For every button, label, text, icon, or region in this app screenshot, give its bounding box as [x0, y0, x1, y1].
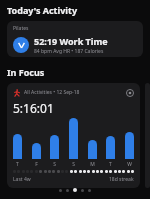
button[interactable]: Options [125, 88, 134, 97]
staticText: In Focus [7, 66, 45, 78]
staticText: 18d streak [109, 176, 134, 183]
staticText: F [35, 161, 38, 168]
staticText: 5:16:01 [13, 100, 54, 116]
staticText: S [72, 161, 75, 168]
staticText: W [127, 161, 132, 168]
button[interactable]: All Activities • 12 Sep-18 [7, 83, 140, 188]
staticText: Last 4w [13, 176, 31, 183]
staticText: 84 bpm Avg HR • 187 Calories [34, 48, 104, 55]
staticText: M [90, 161, 95, 168]
staticText: T [109, 161, 112, 168]
staticText: 52:19 Work Time [34, 35, 108, 47]
staticText: Pilates [13, 25, 29, 32]
button[interactable]: Pilates [7, 21, 143, 57]
staticText: T [16, 161, 19, 168]
staticText: All Activities • 12 Sep-18 [24, 89, 80, 96]
staticText: S [53, 161, 56, 168]
staticText: Today's Activity [7, 4, 78, 16]
